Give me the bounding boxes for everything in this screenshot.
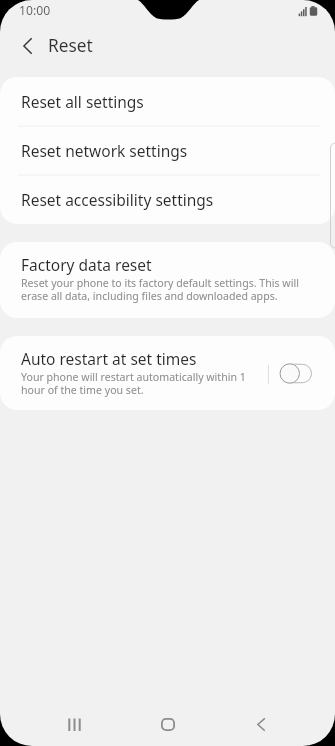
staticText: Reset all settings [21,91,144,112]
button[interactable]: Auto restart at set times toggle [273,336,329,410]
staticText: Your phone will restart automatically wi… [21,370,252,398]
button[interactable]: Reset accessibility settings [0,175,335,224]
staticText: 10:00 [19,2,51,19]
staticText: Reset your phone to its factory default … [21,276,320,304]
button[interactable]: Home [121,703,215,746]
button[interactable]: Reset all settings [0,77,335,126]
button[interactable]: Factory data reset [0,242,335,318]
staticText: Reset network settings [21,140,188,161]
staticText: Factory data reset [21,254,152,275]
button[interactable]: Reset network settings [0,126,335,175]
button[interactable]: Back [215,703,307,746]
staticText: Auto restart at set times [21,348,197,369]
staticText: Reset [48,34,93,58]
staticText: Reset accessibility settings [21,189,214,210]
button[interactable]: Auto restart at set times [0,336,268,410]
button[interactable]: Recent apps [28,703,121,746]
button[interactable]: Navigate up [4,26,51,66]
